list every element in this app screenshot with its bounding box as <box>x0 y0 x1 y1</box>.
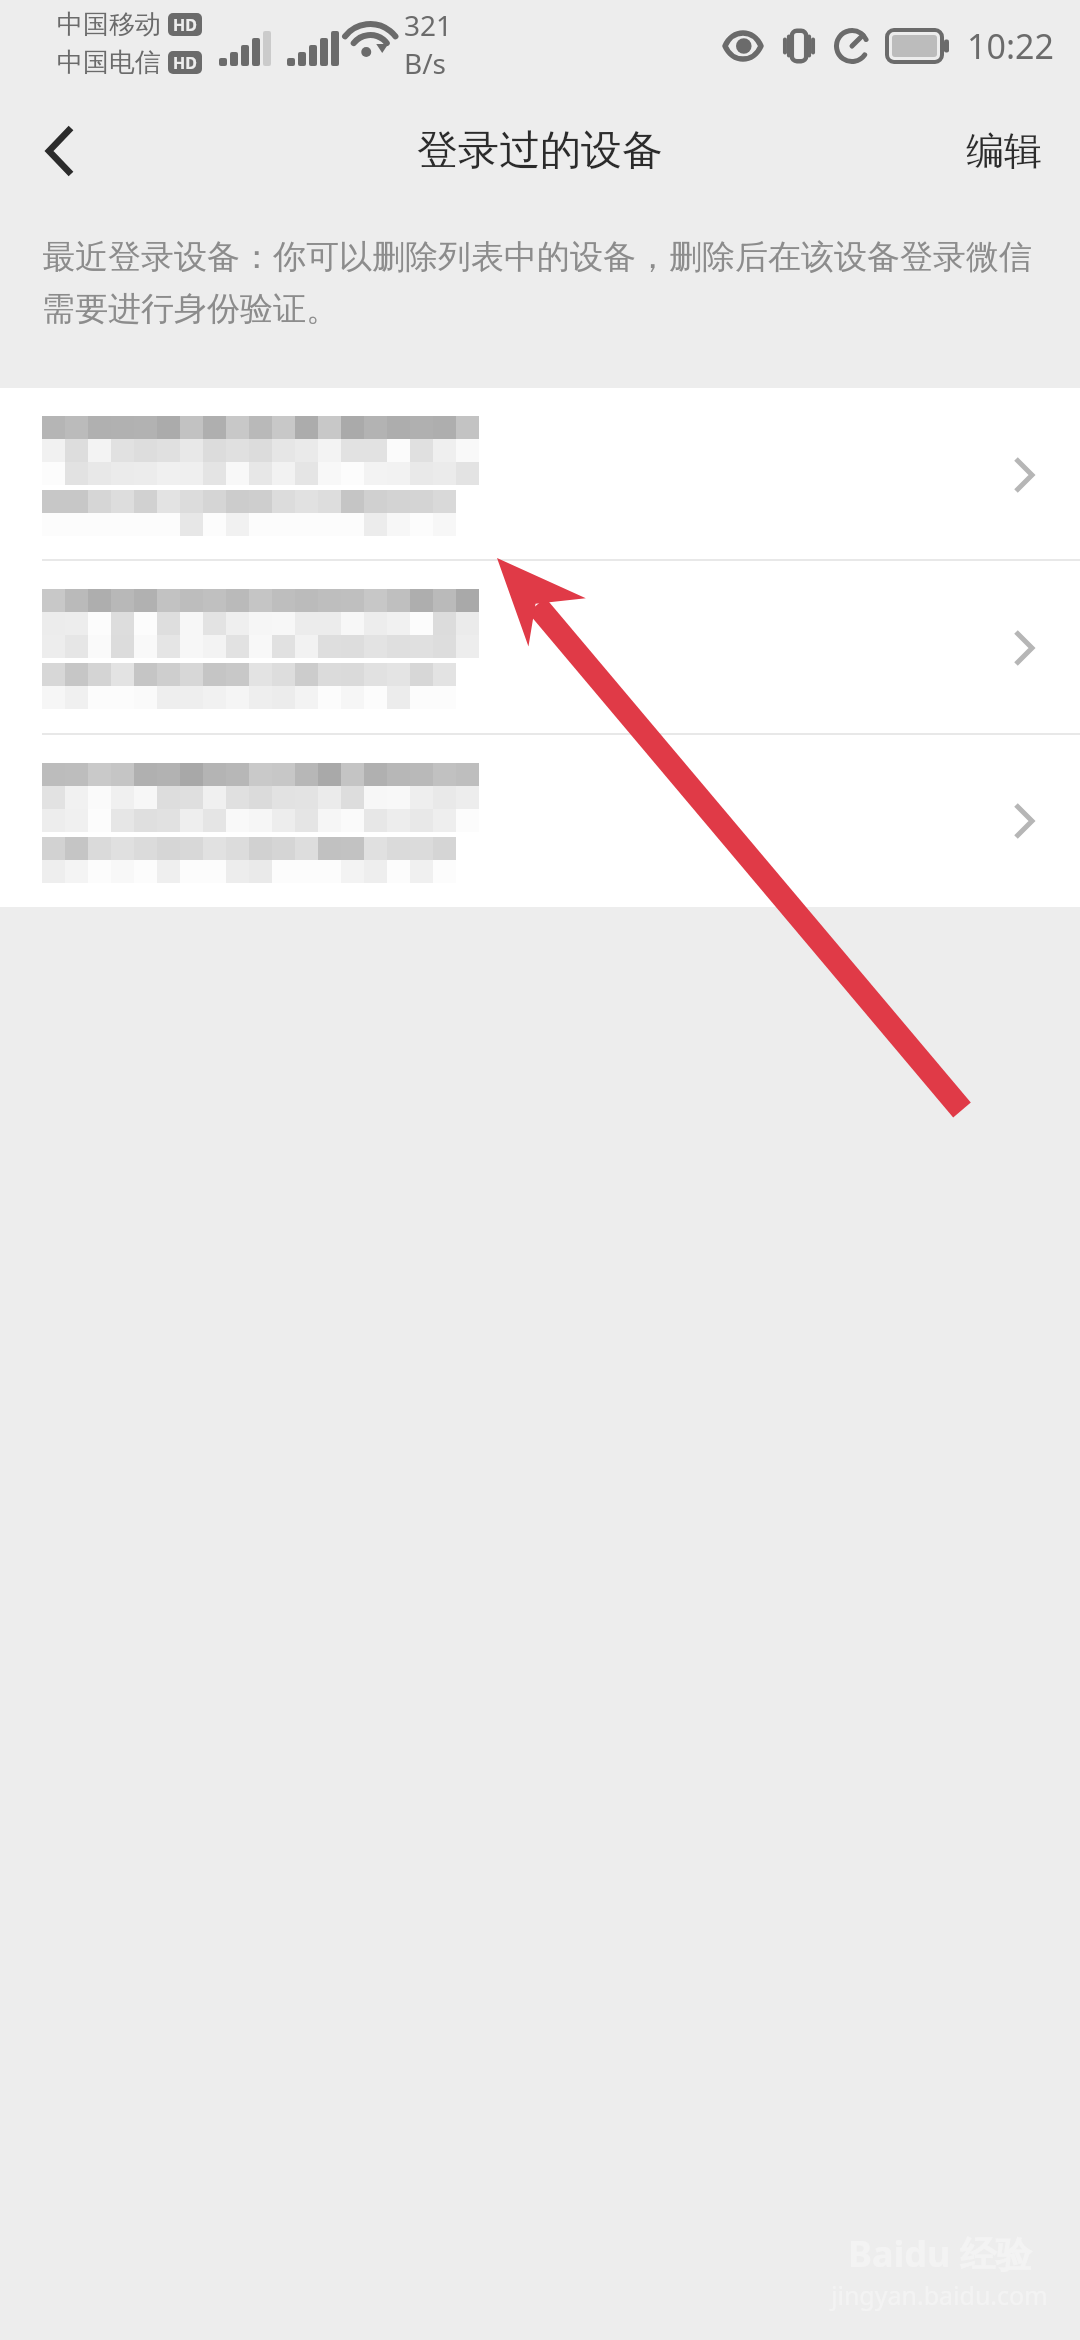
staticText: HD <box>173 14 197 36</box>
staticText: HD <box>173 52 197 74</box>
button[interactable]: 设备详情 <box>0 735 1080 907</box>
button[interactable]: 设备详情 <box>0 388 1080 561</box>
staticText: 中国电信 <box>57 46 161 79</box>
button[interactable]: 设备详情 <box>0 561 1080 735</box>
staticText: B/s <box>404 44 447 82</box>
staticText: 编辑 <box>966 127 1042 175</box>
button[interactable]: 编辑 <box>928 92 1080 210</box>
staticText: 中国移动 <box>57 8 161 41</box>
staticText: 最近登录设备：你可以删除列表中的设备，删除后在该设备登录微信需要进行身份验证。 <box>42 236 1046 330</box>
staticText: 10:22 <box>967 23 1054 69</box>
button[interactable]: 返回 <box>0 92 118 210</box>
staticText: 登录过的设备 <box>417 125 663 177</box>
staticText: 321 <box>404 6 453 44</box>
